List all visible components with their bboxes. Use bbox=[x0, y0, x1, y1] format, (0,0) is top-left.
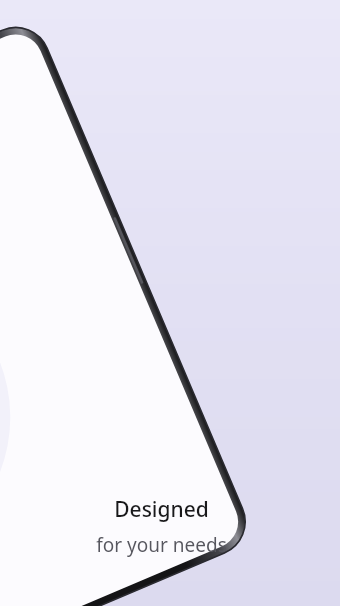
staticText: Designed bbox=[114, 495, 209, 524]
staticText: for your needs bbox=[96, 532, 227, 558]
other: Phone app preview bbox=[0, 0, 340, 606]
button[interactable]: Designed bbox=[96, 495, 227, 558]
